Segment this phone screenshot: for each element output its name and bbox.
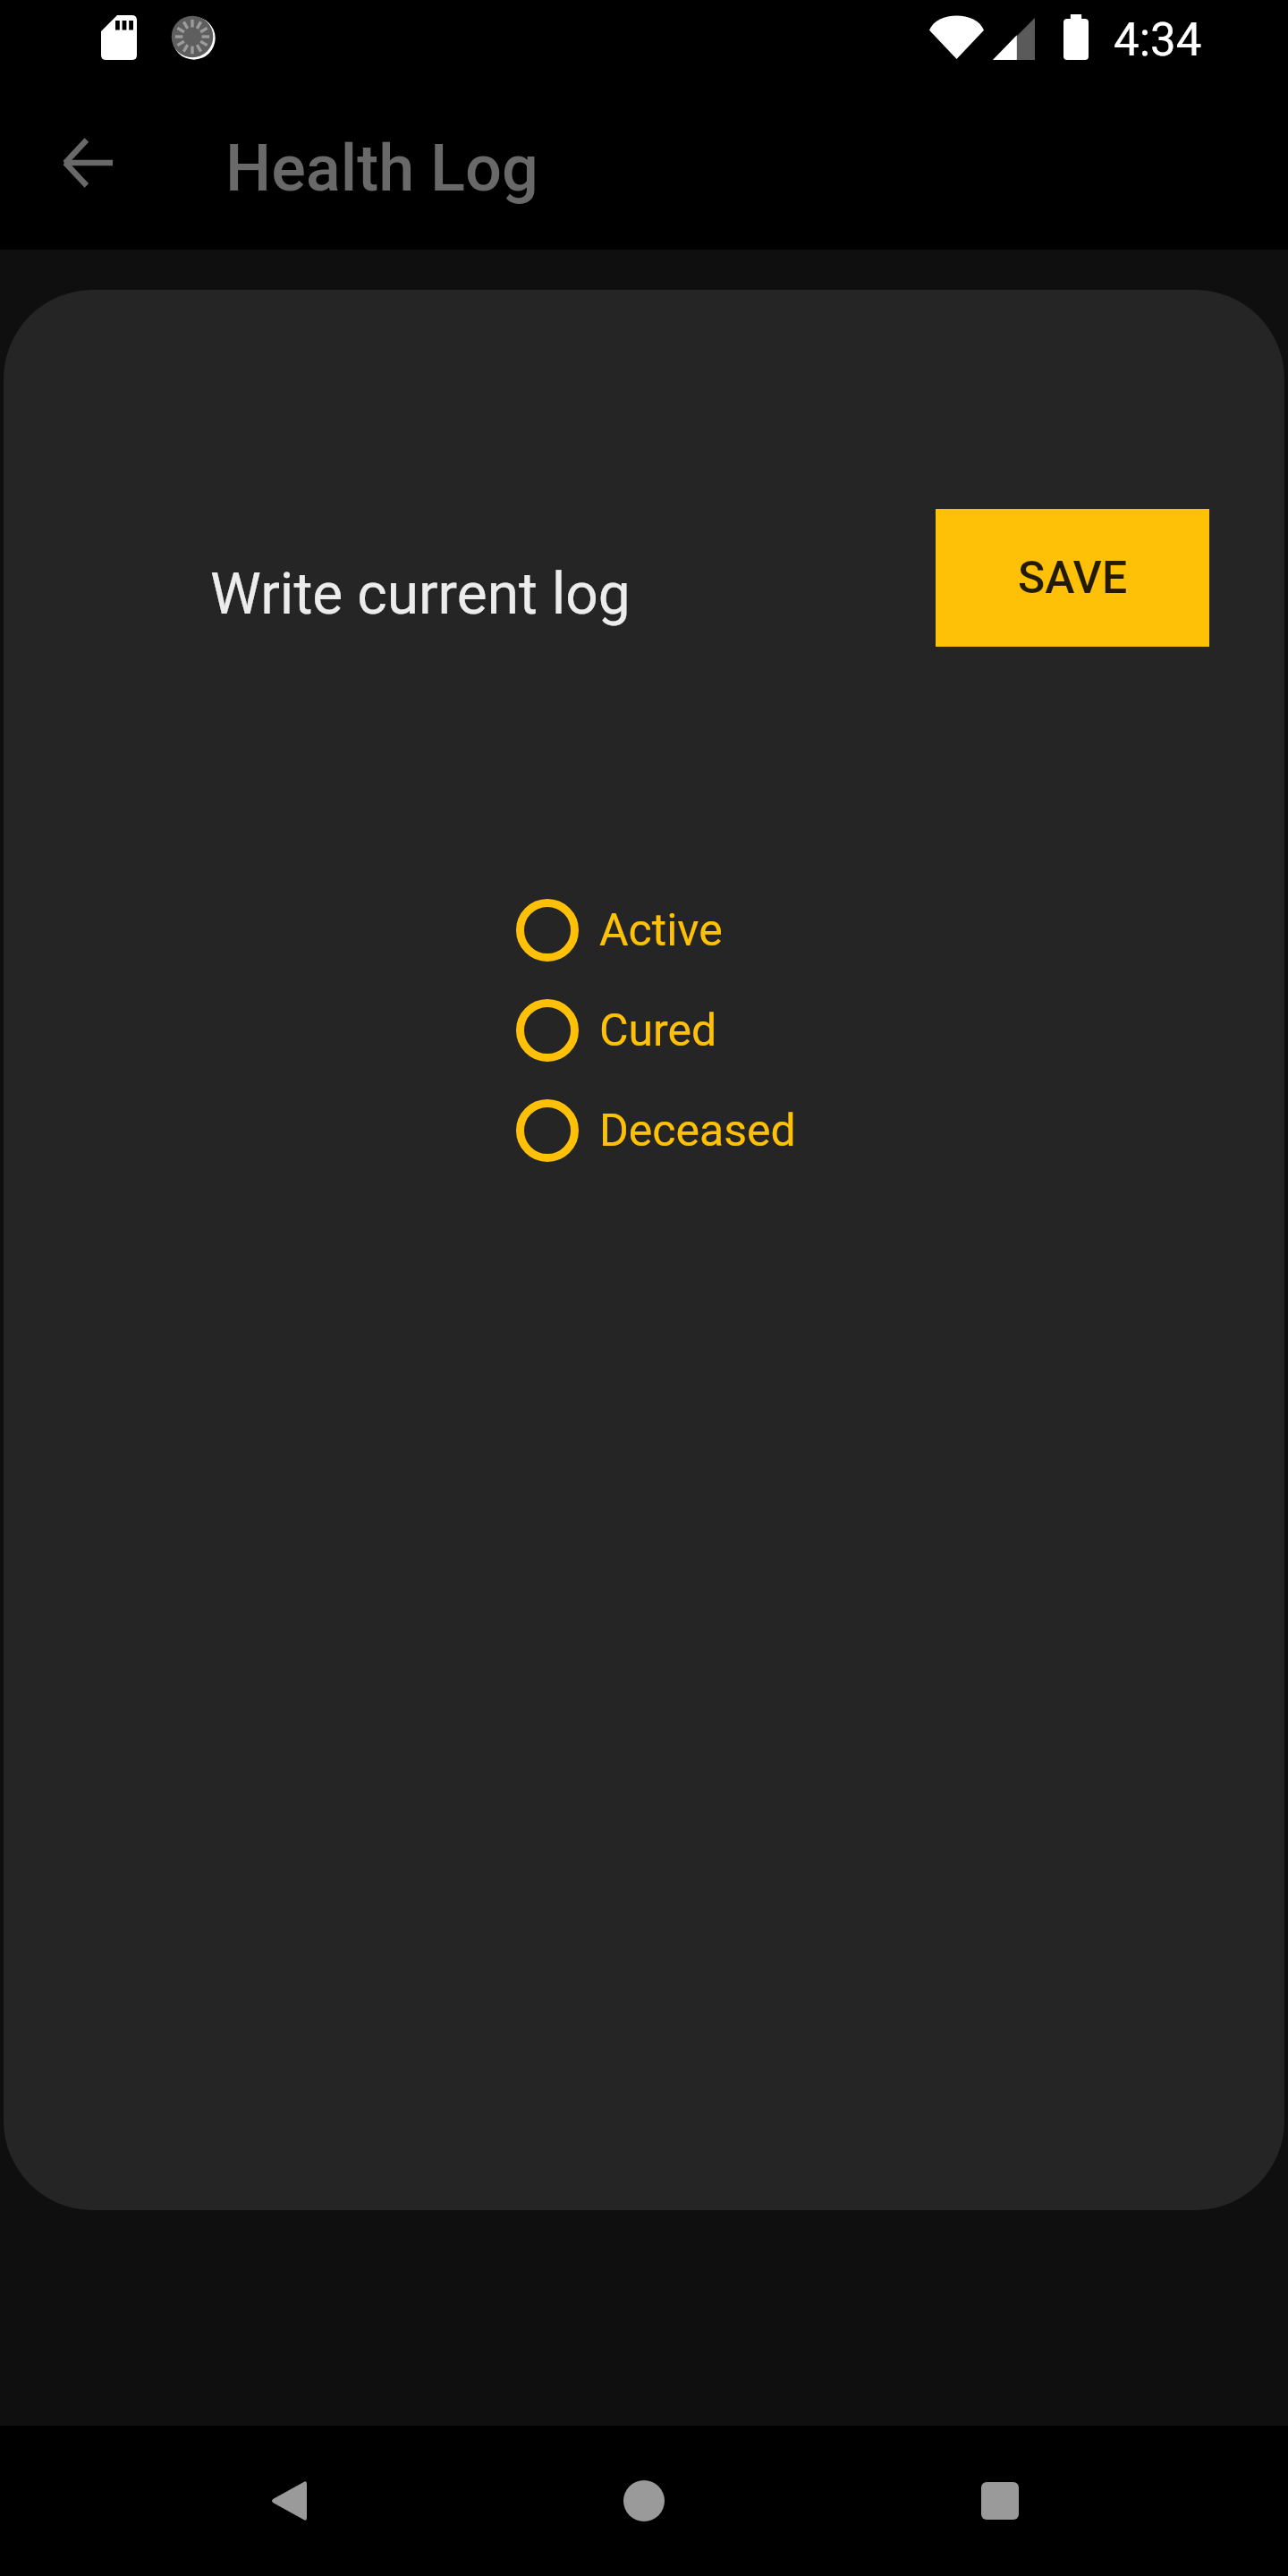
button[interactable]: Home bbox=[577, 2434, 711, 2568]
staticText: Health Log bbox=[225, 131, 538, 206]
button[interactable]: Recent apps bbox=[933, 2434, 1067, 2568]
button[interactable]: Active bbox=[516, 899, 744, 962]
staticText: Active bbox=[599, 904, 723, 957]
button[interactable]: Back bbox=[38, 119, 137, 217]
button[interactable]: Cured bbox=[516, 999, 739, 1062]
staticText: 4:34 bbox=[1114, 13, 1202, 67]
button[interactable]: SAVE bbox=[936, 509, 1209, 647]
button[interactable]: Deceased bbox=[516, 1099, 818, 1162]
staticText: SAVE bbox=[1018, 552, 1128, 605]
staticText: Write current log bbox=[210, 561, 631, 628]
staticText: Cured bbox=[599, 1004, 717, 1057]
staticText: Deceased bbox=[599, 1105, 796, 1157]
button[interactable]: Back bbox=[222, 2434, 356, 2568]
